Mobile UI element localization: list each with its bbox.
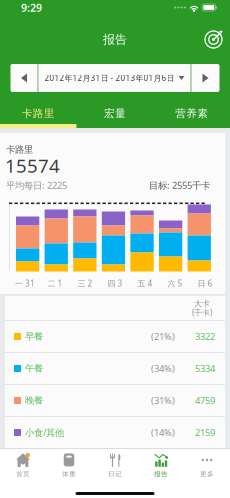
staticText: 报告 — [154, 470, 168, 478]
button[interactable]: 早餐 — [5, 321, 225, 352]
staticText: 四 3 — [107, 278, 122, 289]
button[interactable]: 卡路里 — [0, 95, 77, 128]
button[interactable]: 体重 — [46, 449, 92, 482]
staticText: 六 5 — [167, 278, 182, 289]
staticText: 日记 — [108, 470, 122, 478]
button[interactable]: 目标 — [197, 22, 230, 57]
staticText: 3322 — [195, 330, 215, 343]
button[interactable]: 日记 — [92, 449, 138, 482]
staticText: 更多 — [200, 470, 214, 478]
staticText: 早餐 — [25, 331, 43, 342]
staticText: (21%) — [151, 330, 175, 343]
staticText: 2159 — [195, 426, 215, 439]
staticText: (31%) — [151, 394, 175, 407]
staticText: 体重 — [62, 470, 76, 478]
staticText: 二 1 — [47, 278, 62, 289]
staticText: 平均每日: 2225 — [6, 179, 67, 191]
staticText: 目标: 2555千卡 — [149, 179, 210, 191]
button[interactable]: 首页 — [0, 449, 46, 482]
staticText: 午餐 — [25, 363, 43, 374]
staticText: 一 31 — [15, 278, 35, 289]
staticText: (14%) — [151, 426, 175, 439]
staticText: 15574 — [5, 153, 60, 178]
staticText: 三 2 — [77, 278, 92, 289]
staticText: 卡路里 — [6, 144, 33, 155]
staticText: 2012年12月31日 - 2013年01月6日 — [44, 73, 174, 83]
button[interactable]: 午餐 — [5, 353, 225, 384]
staticText: 大卡 — [194, 299, 210, 308]
staticText: 5334 — [195, 362, 215, 375]
staticText: 9:29 — [21, 0, 42, 15]
staticText: 五 4 — [137, 278, 152, 289]
staticText: 营养素 — [175, 107, 208, 120]
staticText: 卡路里 — [22, 107, 55, 120]
button[interactable]: 小食/其他 — [5, 417, 225, 448]
staticText: (34%) — [151, 362, 175, 375]
button[interactable]: 晚餐 — [5, 385, 225, 416]
staticText: 报告 — [103, 32, 127, 47]
staticText: 日 6 — [197, 278, 212, 289]
button[interactable]: 更多 — [184, 449, 230, 482]
staticText: (千卡) — [192, 307, 212, 318]
button[interactable]: 上一周 — [10, 64, 37, 92]
staticText: 小食/其他 — [25, 426, 64, 439]
staticText: 晚餐 — [25, 395, 43, 406]
staticText: 宏量 — [104, 107, 126, 120]
staticText: 4759 — [195, 394, 215, 407]
button[interactable]: 报告 — [138, 449, 184, 482]
button[interactable]: 下一周 — [191, 64, 219, 92]
button[interactable]: 宏量 — [77, 95, 153, 128]
staticText: 首页 — [16, 470, 30, 478]
button[interactable]: 营养素 — [153, 95, 230, 128]
